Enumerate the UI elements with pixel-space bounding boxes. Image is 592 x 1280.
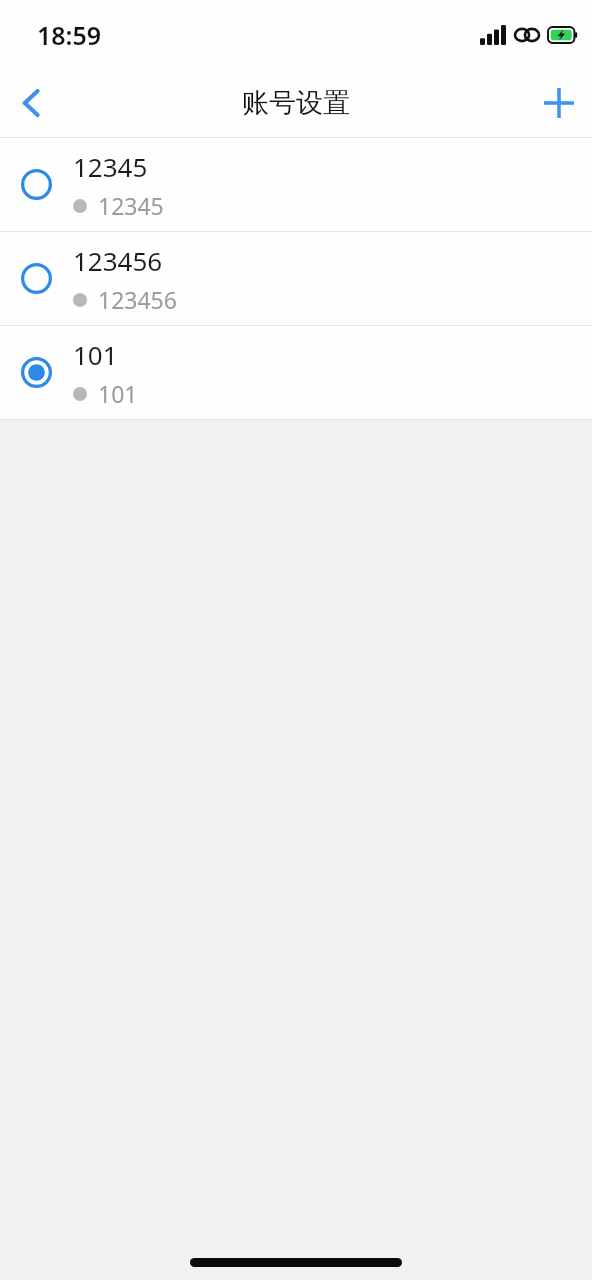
staticText: 账号设置 <box>242 86 350 120</box>
button[interactable]: 123456 <box>0 232 592 325</box>
staticText: 12345 <box>73 149 148 184</box>
staticText: 101 <box>73 337 118 372</box>
button[interactable]: 101 <box>0 326 592 419</box>
button[interactable]: Add account <box>526 70 592 136</box>
staticText: 12345 <box>98 190 164 221</box>
staticText: 123456 <box>98 284 177 315</box>
staticText: 123456 <box>73 243 163 278</box>
staticText: 18:59 <box>37 18 102 52</box>
button[interactable]: Back <box>0 72 62 134</box>
button[interactable]: 12345 <box>0 138 592 231</box>
staticText: 101 <box>98 378 138 409</box>
